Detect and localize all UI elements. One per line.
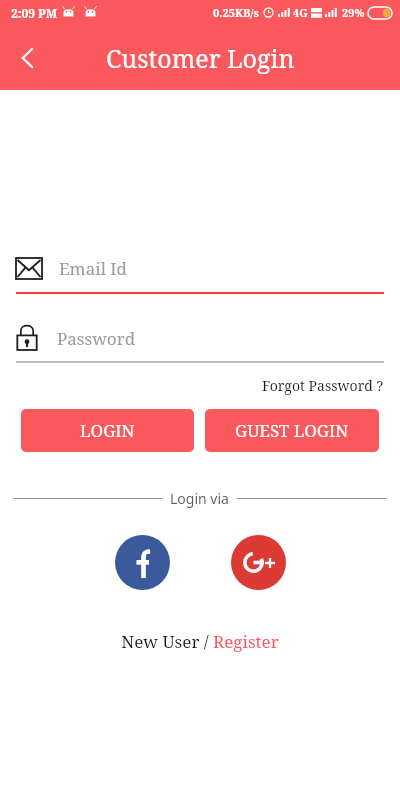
staticText: 4G [293, 5, 308, 20]
staticText: GUEST LOGIN [235, 419, 349, 442]
staticText: Login via [170, 489, 229, 508]
button[interactable]: Forgot Password ? [262, 373, 384, 398]
staticText: 2:09 PM [11, 5, 58, 21]
staticText: Email Id [59, 257, 128, 280]
button[interactable]: LOGIN [21, 409, 194, 452]
staticText: Customer Login [106, 41, 295, 75]
staticText: Forgot Password ? [262, 376, 384, 395]
staticText: Password [57, 327, 136, 350]
button[interactable]: Login with Google Plus [231, 535, 286, 590]
button[interactable]: Login with Facebook [115, 535, 170, 590]
button[interactable]: Back [4, 34, 52, 82]
staticText: New User / Register [121, 630, 279, 653]
staticText: LOGIN [80, 419, 135, 442]
button[interactable]: GUEST LOGIN [205, 409, 379, 452]
staticText: 0.25KB/s [213, 5, 259, 20]
staticText: 29% [342, 5, 365, 20]
button[interactable]: Email Id [16, 248, 384, 288]
button[interactable]: Password [16, 318, 384, 358]
button[interactable]: New User / Register [113, 626, 287, 657]
